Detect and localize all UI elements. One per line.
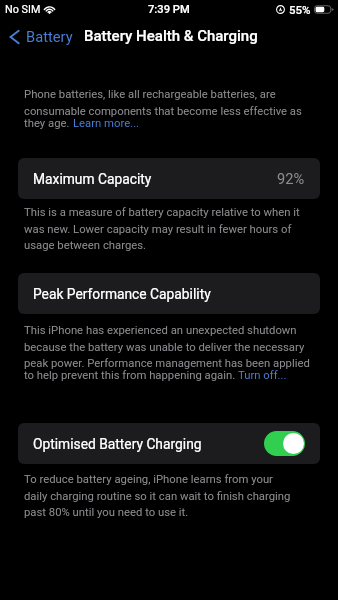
staticText: To reduce battery ageing, iPhone learns … xyxy=(24,473,291,518)
staticText: Peak Performance Capability xyxy=(33,286,211,302)
button[interactable]: Peak Performance Capability xyxy=(18,273,320,314)
staticText: This iPhone has experienced an unexpecte… xyxy=(24,324,310,369)
staticText: 7:39 PM xyxy=(148,3,190,16)
staticText: Battery xyxy=(26,28,73,45)
staticText: they age. xyxy=(24,117,73,130)
staticText: to help prevent this from happening agai… xyxy=(24,369,238,382)
button[interactable]: Optimised Battery Charging xyxy=(264,431,305,456)
button[interactable]: Turn off... xyxy=(238,369,287,382)
button[interactable]: Learn more... xyxy=(73,117,140,130)
staticText: Battery Health & Charging xyxy=(84,27,258,45)
staticText: 55% xyxy=(289,3,311,16)
staticText: Maximum Capacity xyxy=(33,171,152,187)
staticText: This is a measure of battery capacity re… xyxy=(24,206,300,251)
staticText: No SIM xyxy=(5,3,41,16)
button[interactable]: Battery xyxy=(0,26,77,47)
button[interactable]: Maximum Capacity xyxy=(18,158,320,199)
staticText: 92% xyxy=(277,170,305,187)
staticText: Phone batteries, like all rechargeable b… xyxy=(24,88,302,117)
staticText: Optimised Battery Charging xyxy=(33,436,202,452)
